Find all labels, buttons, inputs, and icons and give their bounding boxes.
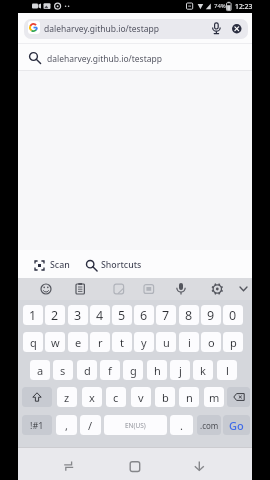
button[interactable]: !#1: [22, 415, 52, 435]
button[interactable]: o: [201, 332, 221, 352]
button[interactable]: y: [134, 332, 154, 352]
staticText: Scan: [50, 259, 70, 271]
staticText: n: [186, 390, 193, 405]
staticText: r: [98, 335, 103, 350]
staticText: 0: [229, 307, 237, 324]
button[interactable]: [109, 279, 129, 299]
staticText: m: [209, 390, 220, 405]
staticText: 2: [51, 307, 59, 324]
staticText: !#1: [30, 419, 44, 431]
staticText: .com: [200, 420, 219, 431]
button[interactable]: [207, 279, 227, 299]
button[interactable]: q: [23, 332, 43, 352]
staticText: u: [163, 335, 170, 350]
button[interactable]: .com: [197, 415, 221, 435]
staticText: w: [51, 335, 60, 350]
button[interactable]: Shortcuts: [85, 255, 155, 276]
staticText: 3: [74, 307, 82, 324]
staticText: Go: [229, 418, 244, 433]
staticText: l: [226, 363, 229, 378]
button[interactable]: [24, 19, 248, 39]
button[interactable]: [70, 279, 90, 299]
staticText: 1: [29, 307, 37, 324]
button[interactable]: e: [68, 332, 88, 352]
button[interactable]: [22, 387, 52, 407]
button[interactable]: 9: [201, 305, 221, 325]
button[interactable]: k: [193, 360, 213, 380]
staticText: 74%: [214, 2, 226, 10]
staticText: g: [130, 363, 137, 378]
button[interactable]: Go: [223, 415, 250, 435]
button[interactable]: c: [106, 387, 126, 407]
staticText: 8: [185, 307, 193, 324]
button[interactable]: s: [53, 360, 73, 380]
button[interactable]: [36, 279, 56, 299]
staticText: y: [141, 335, 147, 350]
button[interactable]: u: [156, 332, 176, 352]
button[interactable]: [63, 460, 75, 472]
staticText: p: [230, 335, 237, 350]
button[interactable]: [232, 24, 242, 34]
button[interactable]: n: [179, 387, 199, 407]
staticText: i: [188, 335, 191, 350]
button[interactable]: w: [45, 332, 65, 352]
staticText: e: [75, 335, 82, 350]
button[interactable]: [171, 279, 191, 299]
button[interactable]: d: [77, 360, 97, 380]
button[interactable]: z: [57, 387, 77, 407]
staticText: 12:23: [235, 2, 253, 11]
staticText: daleharvey.github.io/testapp: [44, 23, 159, 35]
staticText: 4: [96, 307, 104, 324]
button[interactable]: h: [147, 360, 167, 380]
button[interactable]: p: [223, 332, 243, 352]
button[interactable]: Scan: [34, 255, 86, 276]
button[interactable]: ,: [56, 415, 77, 435]
button[interactable]: r: [90, 332, 110, 352]
button[interactable]: 3: [68, 305, 88, 325]
button[interactable]: EN(US): [104, 415, 167, 435]
staticText: 5: [118, 307, 126, 324]
button[interactable]: .: [170, 415, 193, 435]
staticText: j: [179, 363, 182, 378]
button[interactable]: j: [170, 360, 190, 380]
staticText: v: [138, 390, 144, 405]
button[interactable]: a: [30, 360, 50, 380]
button[interactable]: f: [100, 360, 120, 380]
staticText: d: [84, 363, 91, 378]
button[interactable]: [227, 387, 250, 407]
staticText: ,: [65, 418, 68, 433]
staticText: h: [154, 363, 161, 378]
staticText: daleharvey.github.io/testapp: [47, 53, 162, 65]
button[interactable]: b: [155, 387, 175, 407]
button[interactable]: /: [80, 415, 101, 435]
staticText: z: [64, 390, 70, 405]
button[interactable]: [234, 279, 254, 299]
button[interactable]: i: [179, 332, 199, 352]
button[interactable]: t: [112, 332, 132, 352]
button[interactable]: [192, 458, 206, 472]
button[interactable]: [128, 459, 142, 473]
staticText: Shortcuts: [101, 259, 142, 271]
staticText: x: [89, 390, 95, 405]
staticText: s: [60, 363, 66, 378]
staticText: b: [162, 390, 169, 405]
staticText: t: [120, 335, 124, 350]
staticText: 6: [140, 307, 148, 324]
button[interactable]: g: [123, 360, 143, 380]
button[interactable]: [210, 22, 223, 35]
button[interactable]: v: [131, 387, 151, 407]
button[interactable]: 5: [112, 305, 132, 325]
button[interactable]: 2: [45, 305, 65, 325]
button[interactable]: m: [204, 387, 224, 407]
button[interactable]: daleharvey.github.io/testapp: [18, 44, 252, 70]
staticText: f: [108, 363, 112, 378]
button[interactable]: 8: [179, 305, 199, 325]
button[interactable]: l: [217, 360, 237, 380]
button[interactable]: x: [82, 387, 102, 407]
button[interactable]: 6: [134, 305, 154, 325]
button[interactable]: 7: [156, 305, 176, 325]
button[interactable]: 0: [223, 305, 243, 325]
button[interactable]: 4: [90, 305, 110, 325]
button[interactable]: [138, 279, 158, 299]
button[interactable]: 1: [23, 305, 43, 325]
